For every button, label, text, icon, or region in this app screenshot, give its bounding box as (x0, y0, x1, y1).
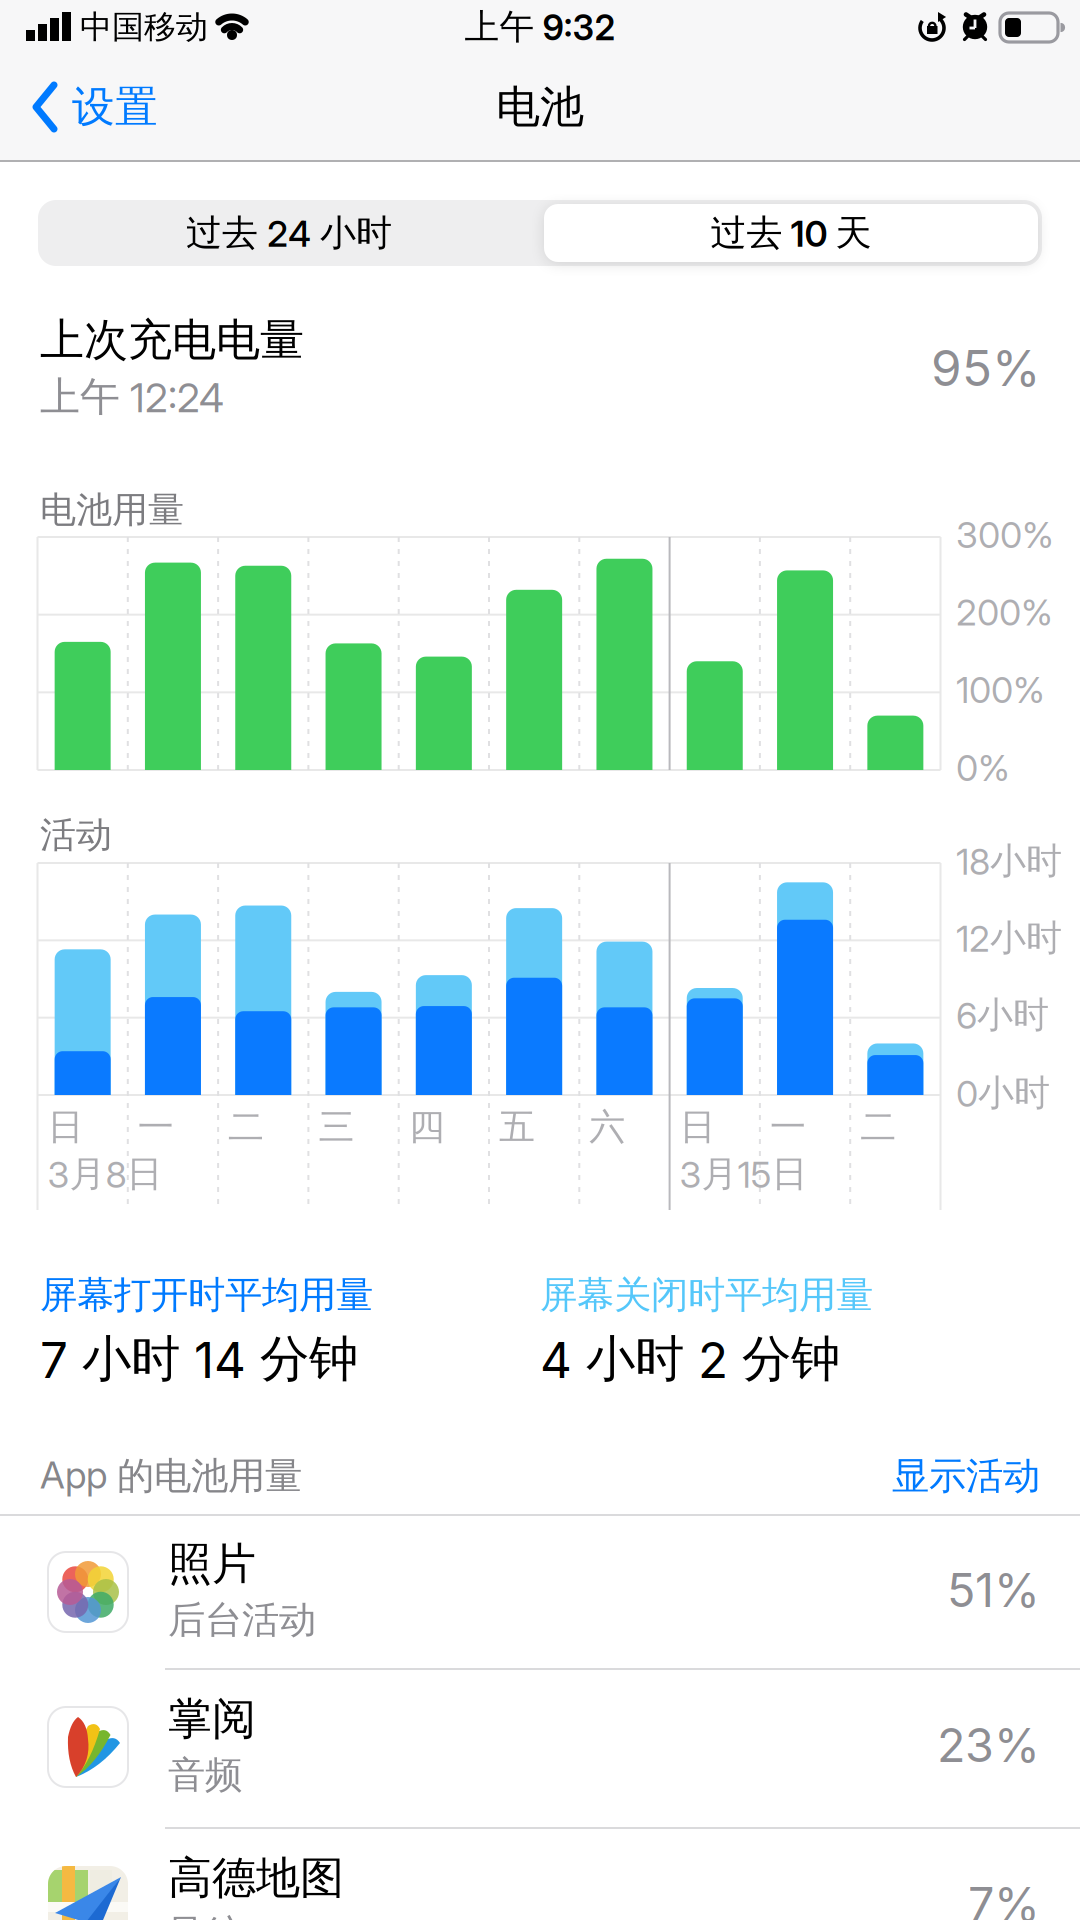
button[interactable]: 设置 (32, 54, 158, 160)
staticText: 上午 9:32 (464, 6, 615, 48)
staticText: 后台活动 (168, 1597, 316, 1643)
staticText: 高德地图 (168, 1851, 344, 1905)
staticText: 五 (499, 1105, 535, 1149)
staticText: 六 (589, 1105, 625, 1149)
staticText: 6小时 (956, 993, 1049, 1037)
staticText: 7 小时 14 分钟 (40, 1329, 358, 1389)
staticText: 12小时 (956, 916, 1062, 960)
staticText: 上次充电电量 (40, 313, 304, 367)
staticText: 7% (968, 1876, 1040, 1920)
staticText: 活动 (40, 813, 112, 857)
staticText: 电池 (496, 80, 584, 134)
staticText: 电池用量 (40, 488, 184, 532)
staticText: 屏幕打开时平均用量 (40, 1272, 373, 1318)
staticText: 二 (228, 1105, 264, 1149)
staticText: 18小时 (956, 839, 1062, 883)
staticText: 导航 (168, 1911, 242, 1920)
staticText: 100% (956, 669, 1045, 711)
staticText: 四 (409, 1105, 445, 1149)
button[interactable]: 过去 10 天 (540, 200, 1042, 266)
staticText: 日 (47, 1105, 83, 1149)
staticText: 一 (138, 1105, 174, 1149)
button[interactable]: 显示活动 (740, 1452, 1040, 1500)
staticText: 一 (770, 1105, 806, 1149)
staticText: 200% (956, 591, 1053, 634)
staticText: 三 (318, 1105, 354, 1149)
staticText: 显示活动 (892, 1453, 1040, 1499)
staticText: 23% (937, 1717, 1040, 1773)
staticText: 300% (956, 514, 1054, 556)
staticText: 中国移动 (80, 7, 208, 47)
button[interactable]: 掌阅 (0, 1671, 1080, 1824)
staticText: 上午 12:24 (40, 372, 224, 421)
staticText: 设置 (72, 81, 158, 133)
staticText: 过去 24 小时 (186, 211, 392, 255)
staticText: 3月15日 (680, 1152, 808, 1196)
staticText: 0小时 (956, 1071, 1050, 1115)
staticText: 掌阅 (168, 1692, 256, 1746)
staticText: 3月8日 (47, 1152, 162, 1196)
staticText: 日 (680, 1105, 716, 1149)
button[interactable]: 高德地图 (0, 1830, 1080, 1920)
staticText: 屏幕关闭时平均用量 (540, 1272, 873, 1318)
staticText: 51% (947, 1562, 1040, 1618)
button[interactable]: 过去 24 小时 (38, 200, 540, 266)
button[interactable]: 照片 (0, 1516, 1080, 1669)
staticText: 照片 (168, 1537, 256, 1591)
staticText: App 的电池用量 (40, 1453, 302, 1499)
staticText: 过去 10 天 (710, 211, 871, 255)
staticText: 4 小时 2 分钟 (540, 1329, 840, 1389)
staticText: 音频 (168, 1752, 242, 1798)
staticText: 95% (931, 339, 1040, 397)
staticText: 0% (956, 747, 1010, 789)
staticText: 二 (860, 1105, 896, 1149)
